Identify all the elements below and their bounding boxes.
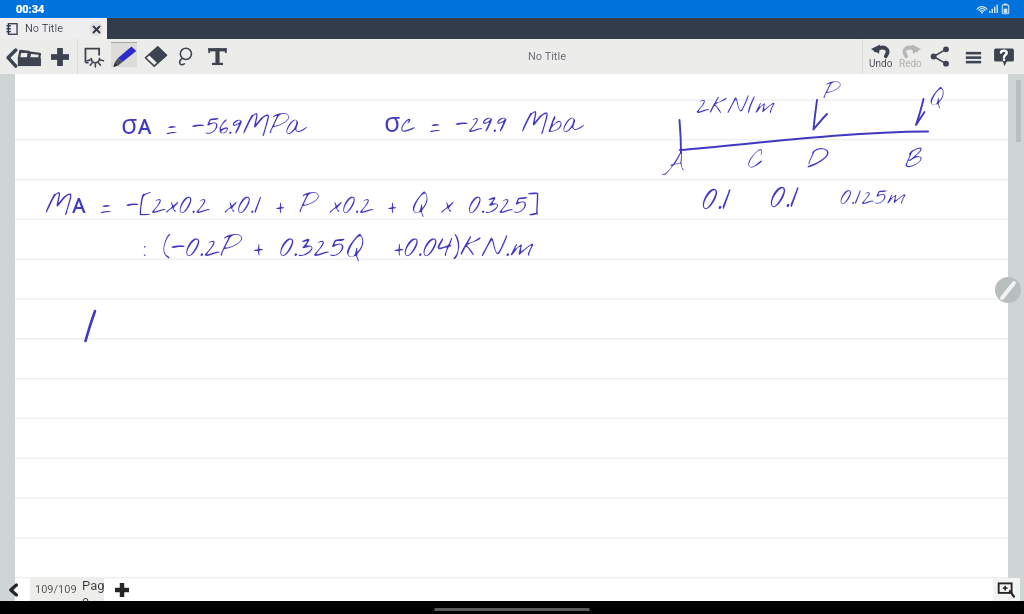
staticText: Page (82, 578, 109, 601)
staticText: 109/109 (35, 583, 77, 596)
staticText: 0.125m (840, 182, 907, 214)
button[interactable]: Notebooks (6, 39, 42, 74)
staticText: B (905, 144, 923, 177)
button[interactable]: Pen (110, 39, 138, 74)
staticText: P (823, 77, 838, 109)
staticText: Undo (869, 58, 893, 70)
staticText: 00:34 (16, 3, 45, 16)
button[interactable]: Select (79, 39, 109, 74)
button[interactable]: Lasso (172, 39, 198, 74)
staticText: 0.1 (770, 176, 800, 220)
button[interactable]: Zoom in (993, 578, 1020, 601)
staticText: No Title (528, 50, 566, 63)
button[interactable]: Close tab (89, 22, 103, 36)
button[interactable]: 109/109 (30, 578, 104, 601)
button[interactable]: Menu (959, 39, 987, 74)
staticText: A (664, 147, 685, 180)
staticText: 0.1 (702, 178, 732, 222)
button[interactable]: No Title (0, 18, 107, 39)
button[interactable]: Redo (896, 39, 925, 74)
staticText: D (807, 144, 828, 177)
button[interactable]: Text tool (204, 39, 230, 74)
staticText: σᴀ = -56.9MPa (121, 105, 304, 145)
staticText: Q (929, 83, 943, 115)
button[interactable]: Help (991, 39, 1017, 74)
staticText: No Title (25, 22, 63, 35)
button[interactable]: Previous page (0, 578, 26, 601)
staticText: 2kN/m (696, 90, 776, 123)
staticText: : (-0.2P + 0.325Q +0.04)kN.m (143, 228, 535, 268)
button[interactable]: Undo (866, 39, 895, 74)
staticText: σc = -29.9 Mba (384, 103, 581, 143)
staticText: Mᴀ = -[2x0.2 x0.1 + P x0.2 + Q x 0.325] (45, 184, 540, 224)
button[interactable]: Share (927, 39, 953, 74)
staticText: C (748, 145, 764, 178)
staticText: Redo (899, 58, 922, 70)
button[interactable]: Add page (44, 39, 76, 74)
button[interactable]: Add page (110, 578, 134, 601)
button[interactable]: Eraser (142, 39, 170, 74)
